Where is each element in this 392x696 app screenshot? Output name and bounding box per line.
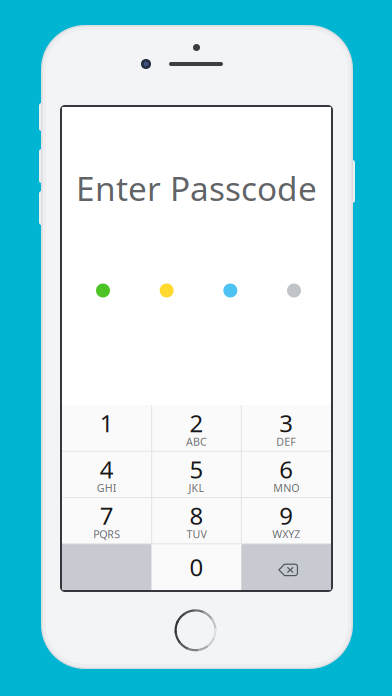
button[interactable]: 8 (152, 497, 241, 544)
button[interactable]: 2 (152, 405, 241, 451)
staticText: 3 (279, 407, 293, 439)
staticText: 0 (189, 551, 203, 583)
staticText: 7 (100, 500, 114, 531)
button[interactable]: 3 (241, 405, 331, 451)
button[interactable]: Delete (241, 544, 331, 590)
staticText: PQRS (93, 527, 120, 541)
staticText: GHI (97, 481, 117, 495)
button[interactable]: 1 (62, 405, 152, 451)
button[interactable]: 0 (152, 544, 241, 590)
staticText: DEF (276, 434, 296, 449)
staticText: 9 (279, 500, 293, 531)
button[interactable]: 5 (152, 451, 241, 497)
staticText: Enter Passcode (76, 166, 317, 210)
button[interactable]: 6 (241, 451, 331, 497)
staticText: MNO (273, 481, 299, 495)
button[interactable]: 9 (241, 497, 331, 544)
staticText: 2 (189, 407, 203, 439)
button[interactable]: 7 (62, 497, 152, 544)
staticText: ABC (186, 434, 207, 449)
staticText: 6 (279, 453, 293, 485)
staticText: 8 (189, 500, 203, 531)
staticText: 4 (100, 453, 114, 485)
staticText: TUV (186, 527, 206, 541)
staticText: JKL (188, 481, 204, 495)
staticText: 1 (100, 407, 114, 439)
button[interactable]: 4 (62, 451, 152, 497)
staticText: 5 (189, 453, 203, 485)
staticText: WXYZ (272, 527, 300, 541)
